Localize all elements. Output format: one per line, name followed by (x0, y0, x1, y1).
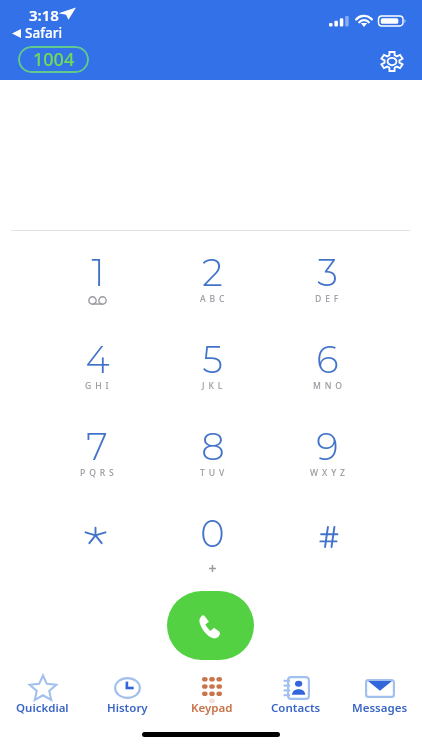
button[interactable]: 0 (164, 511, 260, 591)
button[interactable] (279, 511, 375, 591)
button[interactable]: 2 (164, 250, 260, 330)
staticText: 3:18 (29, 5, 59, 25)
button[interactable]: Messages (338, 671, 422, 724)
staticText: ABC (200, 293, 229, 305)
staticText: WXYZ (310, 467, 349, 479)
staticText: Messages (352, 700, 408, 716)
staticText: 1004 (33, 47, 75, 72)
staticText: Safari (25, 24, 63, 42)
staticText: 7 (86, 424, 108, 469)
staticText: 1 (91, 250, 105, 295)
staticText: 6 (316, 337, 339, 382)
button[interactable]: 6 (279, 337, 375, 417)
button[interactable]: Quickdial (0, 671, 85, 724)
button[interactable]: Keypad (170, 671, 254, 724)
staticText: TUV (200, 467, 229, 479)
button[interactable]: Contacts (254, 671, 338, 724)
staticText: Keypad (191, 700, 233, 716)
button[interactable]: Settings (376, 46, 407, 77)
button[interactable]: 1004 (18, 46, 89, 73)
button[interactable]: 9 (279, 424, 375, 504)
button[interactable]: 3 (279, 250, 375, 330)
staticText: History (107, 700, 148, 716)
staticText: DEF (315, 293, 343, 305)
staticText: MNO (313, 380, 346, 392)
staticText: 5 (202, 337, 223, 382)
staticText: 3 (317, 250, 338, 295)
staticText: 0 (200, 511, 225, 556)
staticText: 8 (201, 424, 225, 469)
button[interactable]: 4 (49, 337, 145, 417)
staticText: PQRS (80, 467, 118, 479)
button[interactable] (49, 511, 145, 591)
staticText: 4 (85, 337, 110, 382)
button[interactable]: 5 (164, 337, 260, 417)
staticText: GHI (85, 380, 113, 392)
staticText: 9 (316, 424, 339, 469)
button[interactable]: 8 (164, 424, 260, 504)
button[interactable]: Call (167, 591, 254, 660)
staticText: 2 (202, 250, 223, 295)
staticText: JKL (202, 380, 227, 392)
button[interactable]: 7 (49, 424, 145, 504)
button[interactable]: 1 (49, 250, 145, 330)
staticText: Contacts (271, 700, 321, 716)
button[interactable]: History (85, 671, 170, 724)
staticText: Quickdial (16, 700, 69, 716)
